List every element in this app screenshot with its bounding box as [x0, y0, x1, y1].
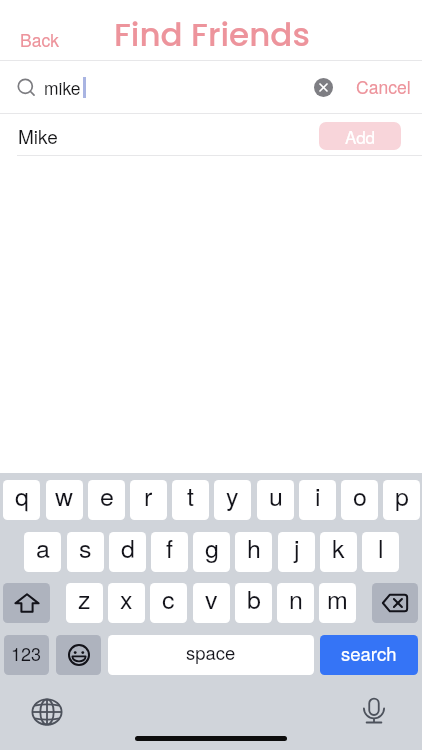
button[interactable]: i [299, 480, 336, 520]
button[interactable]: v [193, 583, 230, 623]
button[interactable]: z [66, 583, 103, 623]
button[interactable]: Change keyboard language [32, 697, 62, 727]
staticText: u [269, 480, 283, 513]
button[interactable]: Shift [3, 583, 50, 623]
button[interactable]: e [88, 480, 125, 520]
staticText: space [186, 639, 236, 665]
staticText: p [395, 480, 409, 513]
staticText: d [121, 532, 135, 565]
button[interactable]: m [319, 583, 356, 623]
button[interactable]: Emoji [56, 635, 101, 675]
staticText: Find Friends [114, 12, 310, 58]
staticText: j [294, 532, 300, 565]
staticText: q [15, 480, 29, 513]
staticText: z [78, 583, 91, 616]
button[interactable]: s [67, 532, 104, 572]
staticText: Add [345, 124, 376, 148]
button[interactable]: y [214, 480, 251, 520]
staticText: f [166, 532, 173, 565]
staticText: 123 [11, 640, 42, 666]
staticText: g [205, 532, 219, 565]
staticText: i [315, 480, 321, 513]
button[interactable]: d [109, 532, 146, 572]
button[interactable]: b [235, 583, 272, 623]
button[interactable]: x [108, 583, 145, 623]
button[interactable]: q [3, 480, 40, 520]
button[interactable]: Clear search text [311, 75, 336, 100]
button[interactable]: h [235, 532, 272, 572]
staticText: c [162, 583, 175, 616]
staticText: x [120, 583, 133, 616]
staticText: e [100, 480, 114, 513]
staticText: t [187, 480, 194, 513]
button[interactable]: search [320, 635, 418, 675]
staticText: o [353, 480, 367, 513]
button[interactable]: r [130, 480, 167, 520]
button[interactable]: w [46, 480, 83, 520]
staticText: s [79, 532, 92, 565]
button[interactable]: k [320, 532, 357, 572]
staticText: Back [20, 27, 59, 52]
staticText: Mike [18, 122, 58, 149]
button[interactable]: space [108, 635, 314, 675]
button[interactable]: 123 [4, 635, 49, 675]
button[interactable]: Cancel [348, 69, 419, 104]
staticText: mike [44, 75, 81, 100]
button[interactable]: g [193, 532, 230, 572]
button[interactable]: l [362, 532, 399, 572]
button[interactable]: f [151, 532, 188, 572]
button[interactable]: o [341, 480, 378, 520]
button[interactable]: t [172, 480, 209, 520]
staticText: m [327, 583, 348, 616]
button[interactable]: Add [319, 122, 401, 150]
button[interactable]: Backspace [372, 583, 418, 623]
staticText: h [247, 532, 261, 565]
staticText: k [332, 532, 345, 565]
staticText: w [55, 480, 74, 513]
staticText: r [144, 480, 153, 513]
button[interactable]: u [257, 480, 294, 520]
button[interactable]: a [24, 532, 61, 572]
staticText: search [341, 640, 397, 666]
button[interactable]: p [383, 480, 420, 520]
button[interactable]: Voice input [359, 697, 389, 727]
staticText: a [36, 532, 50, 565]
button[interactable] [0, 114, 422, 156]
staticText: l [378, 532, 384, 565]
button[interactable]: c [150, 583, 187, 623]
button[interactable]: j [278, 532, 315, 572]
staticText: v [205, 583, 218, 616]
staticText: n [289, 583, 303, 616]
button[interactable]: Back [12, 22, 67, 57]
button[interactable]: n [277, 583, 314, 623]
staticText: b [247, 583, 261, 616]
staticText: Cancel [356, 74, 411, 99]
staticText: y [226, 480, 239, 513]
